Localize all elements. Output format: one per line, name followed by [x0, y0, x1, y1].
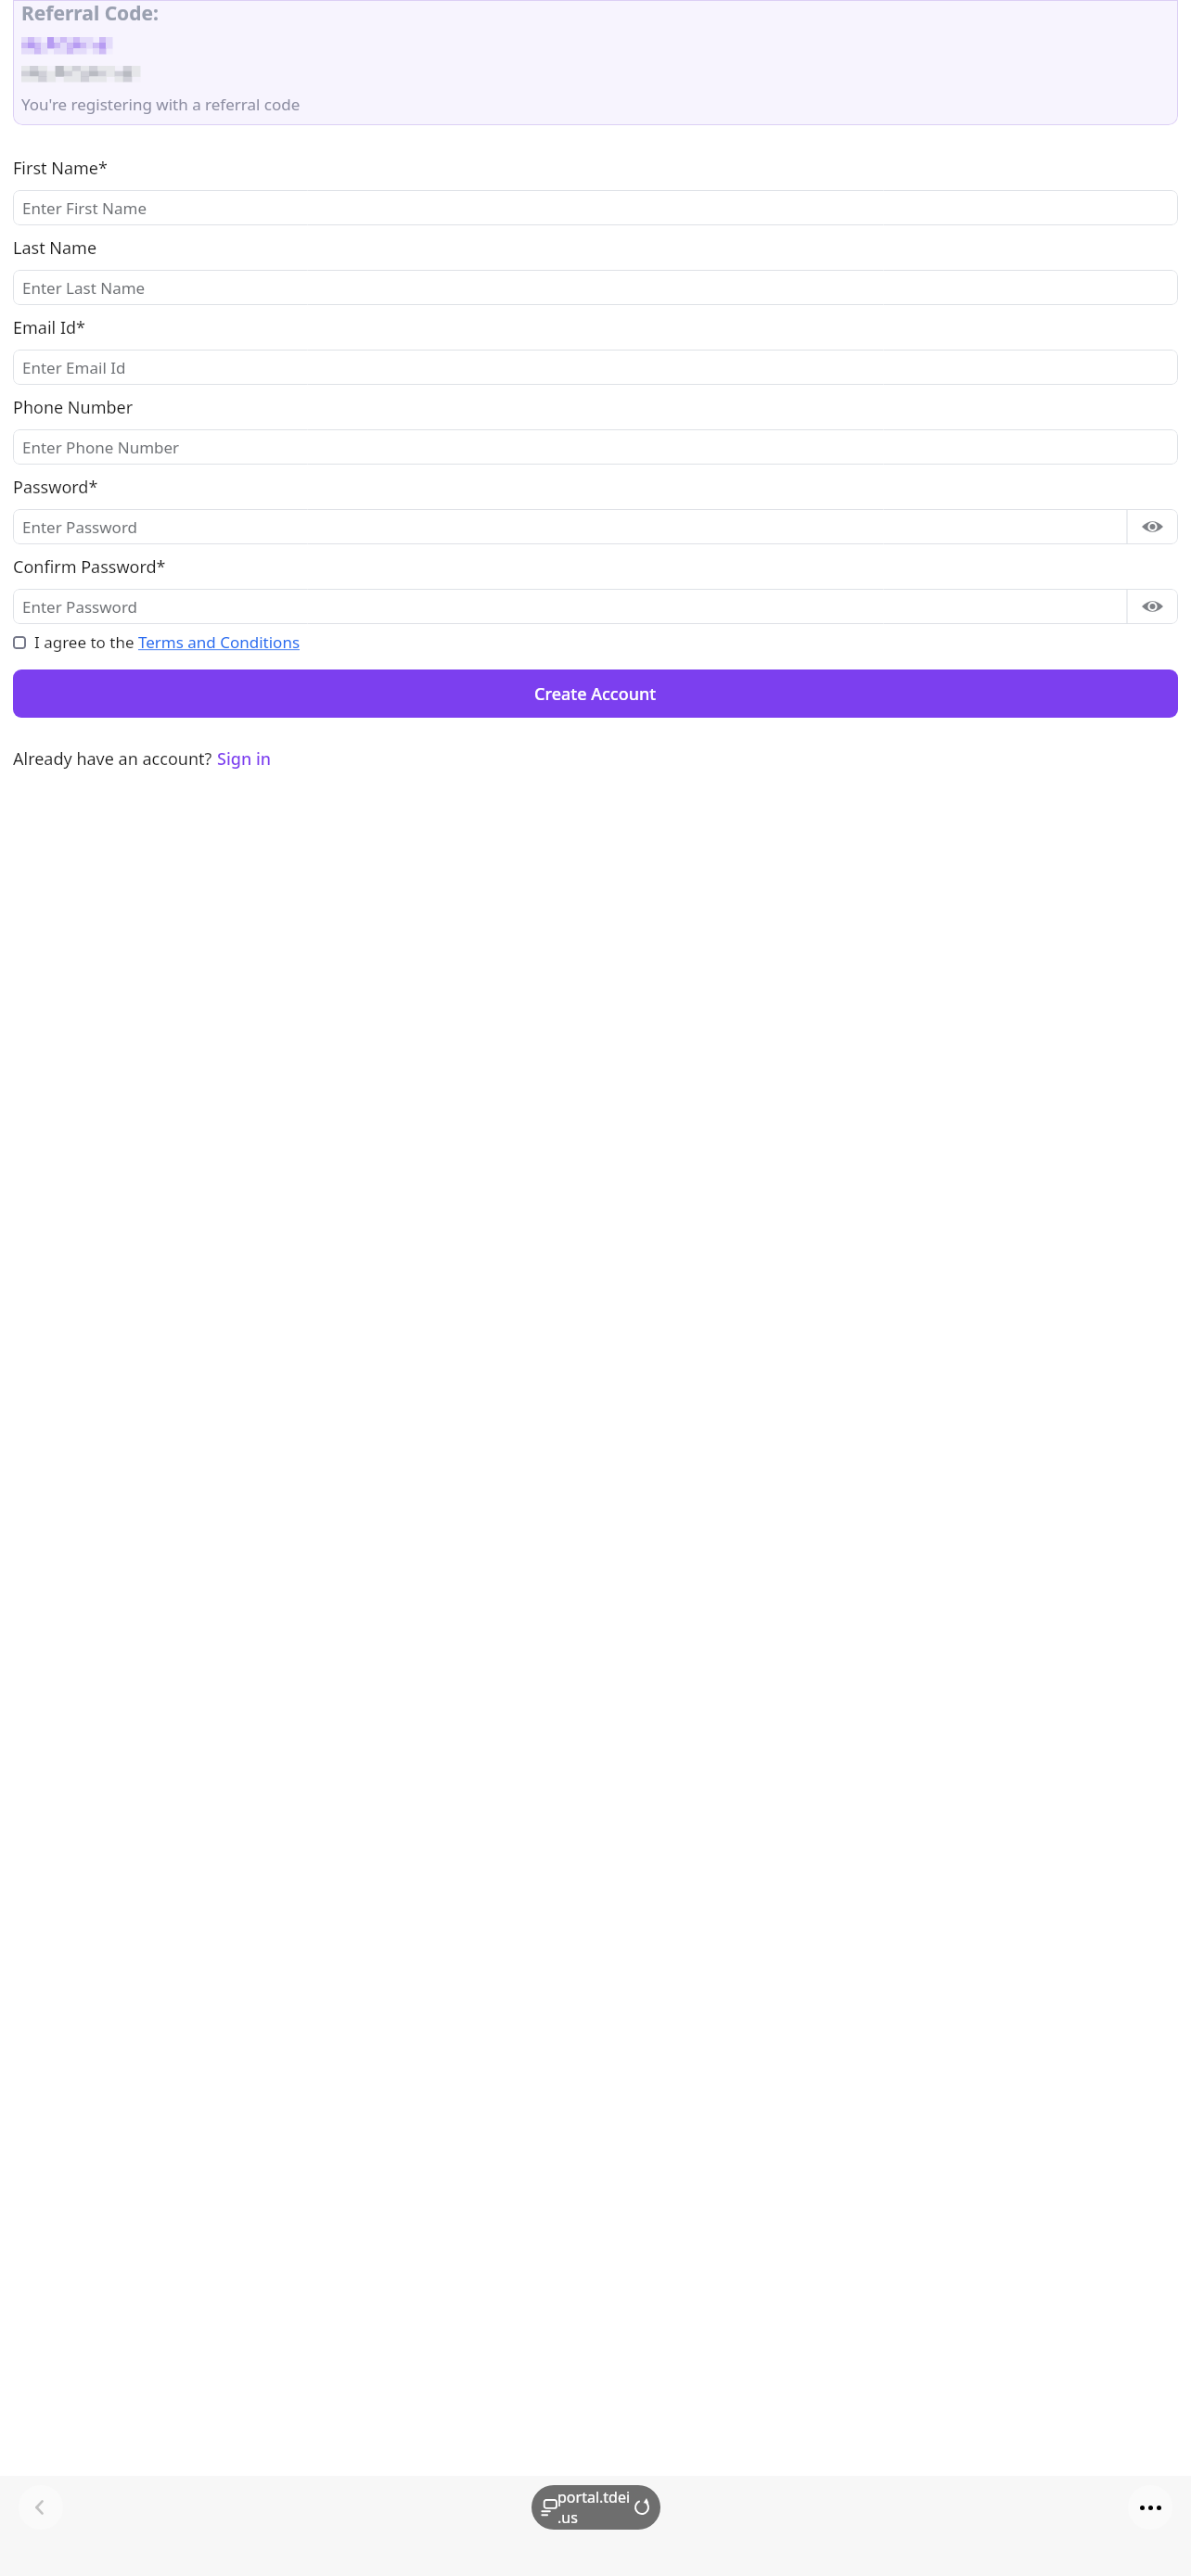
button[interactable]: Show password	[1127, 589, 1178, 624]
button[interactable]: Enter First Name	[13, 190, 1178, 225]
button[interactable]: Enter Password	[13, 509, 1178, 544]
staticText: Sign in	[217, 747, 272, 771]
staticText: portal.tdei.us	[557, 2487, 634, 2528]
button[interactable]: More	[1128, 2485, 1172, 2530]
staticText: Create Account	[534, 682, 657, 706]
staticText: Password*	[13, 476, 98, 499]
staticText: Enter Password	[22, 516, 138, 538]
button[interactable]: Sign in	[217, 747, 272, 771]
staticText: I agree to the Terms and Conditions	[34, 631, 301, 653]
staticText: Enter Last Name	[22, 277, 146, 299]
staticText: Referral Code:	[21, 0, 159, 27]
staticText: Enter Email Id	[22, 357, 126, 378]
staticText: Last Name	[13, 236, 97, 260]
button[interactable]: portal.tdei.us	[531, 2485, 660, 2530]
button[interactable]: Reload	[634, 2499, 650, 2516]
button[interactable]: Show password	[1127, 509, 1178, 544]
button[interactable]: Create Account	[13, 670, 1178, 718]
staticText: Already have an account?	[13, 747, 217, 771]
button[interactable]: Referral Code:	[13, 0, 1178, 125]
button[interactable]: Enter Phone Number	[13, 429, 1178, 465]
button[interactable]: Enter Email Id	[13, 350, 1178, 385]
staticText: Enter First Name	[22, 198, 147, 219]
button[interactable]: Enter Password	[13, 589, 1178, 624]
staticText: Enter Phone Number	[22, 437, 180, 458]
staticText: Email Id*	[13, 316, 85, 339]
staticText: First Name*	[13, 157, 108, 180]
staticText: Enter Password	[22, 596, 138, 618]
button[interactable]: Agree checkbox	[13, 630, 301, 655]
staticText: Confirm Password*	[13, 555, 166, 579]
staticText: You're registering with a referral code	[21, 94, 301, 115]
button[interactable]: Back	[19, 2485, 63, 2530]
staticText: Phone Number	[13, 396, 134, 419]
button[interactable]: Enter Last Name	[13, 270, 1178, 305]
other: Agree checkbox	[13, 636, 26, 649]
